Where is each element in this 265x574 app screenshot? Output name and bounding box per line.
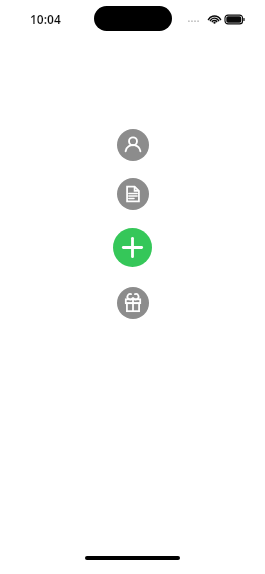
staticText: 10:04 [30,11,61,27]
button[interactable]: Documents [117,178,149,210]
button[interactable]: Add [113,228,152,267]
button[interactable]: Profile [117,129,149,161]
button[interactable]: Gifts [117,287,149,319]
